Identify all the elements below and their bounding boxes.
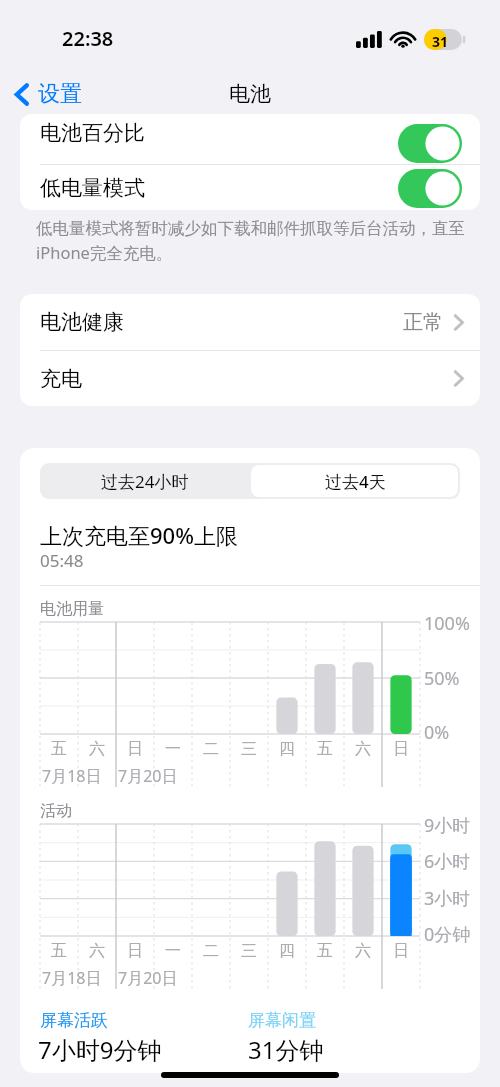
staticText: 电池百分比 (40, 120, 145, 146)
button[interactable]: 低电量模式 (20, 165, 480, 210)
other: Home indicator (161, 1072, 339, 1078)
button[interactable]: Toggle (396, 122, 464, 164)
staticText: 低电量模式将暂时减少如下载和邮件抓取等后台活动，直至 iPhone完全充电。 (36, 218, 481, 264)
button[interactable]: 过去24小时 (40, 463, 250, 499)
staticText: 日 (127, 739, 143, 759)
staticText: 过去4天 (325, 470, 386, 493)
staticText: 过去24小时 (101, 470, 189, 493)
staticText: 0分钟 (424, 922, 471, 947)
staticText: 三 (241, 941, 257, 961)
button[interactable]: 电池百分比 (20, 114, 480, 164)
staticText: 活动 (40, 801, 72, 821)
button[interactable]: 过去4天 (250, 463, 460, 499)
staticText: 电池健康 (40, 309, 124, 335)
button[interactable]: 电池健康 (20, 294, 480, 350)
staticText: 31分钟 (248, 1033, 324, 1066)
button[interactable]: Toggle (396, 167, 464, 209)
staticText: 五 (317, 739, 333, 759)
staticText: 低电量模式 (40, 175, 145, 201)
staticText: 五 (51, 739, 67, 759)
staticText: 充电 (40, 366, 82, 392)
staticText: 电池用量 (40, 599, 104, 619)
staticText: 05:48 (40, 549, 84, 572)
staticText: 六 (355, 941, 371, 961)
staticText: 一 (165, 739, 181, 759)
staticText: 9小时 (424, 813, 471, 838)
staticText: 日 (127, 941, 143, 961)
staticText: 22:38 (62, 25, 114, 52)
staticText: 电池 (229, 81, 271, 107)
staticText: 3小时 (424, 886, 471, 911)
staticText: 6小时 (424, 849, 471, 874)
staticText: 上次充电至90%上限 (40, 520, 238, 550)
staticText: 0% (424, 720, 450, 745)
staticText: 正常 (403, 310, 443, 335)
staticText: 一 (165, 941, 181, 961)
staticText: 屏幕活跃 (40, 1010, 108, 1031)
staticText: 设置 (38, 80, 82, 108)
staticText: 7小时9分钟 (38, 1033, 162, 1066)
staticText: 四 (279, 739, 295, 759)
staticText: 二 (203, 941, 219, 961)
staticText: 六 (89, 739, 105, 759)
staticText: 日 (393, 941, 409, 961)
staticText: 屏幕闲置 (248, 1010, 316, 1031)
staticText: 三 (241, 739, 257, 759)
staticText: 7月20日 (118, 967, 178, 989)
staticText: 7月18日 (42, 967, 102, 989)
staticText: 7月18日 (42, 765, 102, 787)
staticText: 7月20日 (118, 765, 178, 787)
staticText: 31 (432, 32, 449, 51)
staticText: 四 (279, 941, 295, 961)
staticText: 日 (393, 739, 409, 759)
staticText: 六 (89, 941, 105, 961)
staticText: 二 (203, 739, 219, 759)
staticText: 100% (424, 611, 470, 636)
button[interactable]: 设置 (14, 68, 82, 120)
staticText: 五 (317, 941, 333, 961)
staticText: 50% (424, 666, 460, 691)
button[interactable]: 充电 (20, 351, 480, 406)
staticText: 六 (355, 739, 371, 759)
staticText: 五 (51, 941, 67, 961)
